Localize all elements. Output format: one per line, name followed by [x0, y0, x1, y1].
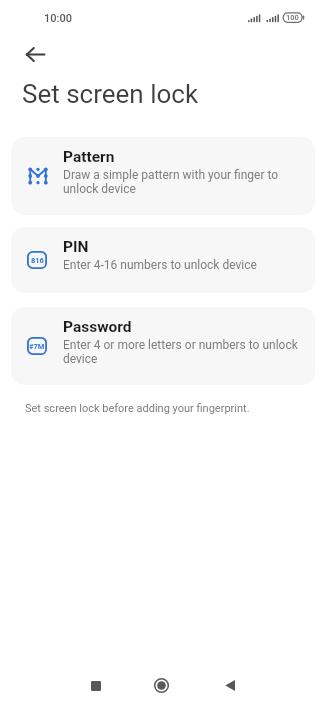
- staticText: Enter 4 or more letters or numbers to un…: [63, 338, 298, 366]
- button[interactable]: #7M: [11, 307, 315, 385]
- staticText: Set screen lock before adding your finge…: [25, 402, 250, 415]
- button[interactable]: [83, 673, 108, 698]
- button[interactable]: 816: [11, 227, 315, 293]
- staticText: PIN: [63, 238, 89, 256]
- staticText: 816: [31, 256, 44, 265]
- button[interactable]: Pattern: [11, 137, 315, 215]
- staticText: Set screen lock: [22, 79, 199, 109]
- staticText: Enter 4-16 numbers to unlock device: [63, 258, 257, 272]
- button[interactable]: [217, 673, 242, 698]
- staticText: Password: [63, 318, 132, 336]
- staticText: #7M: [29, 342, 45, 351]
- button[interactable]: [18, 40, 52, 68]
- staticText: 10:00: [44, 12, 72, 25]
- staticText: Pattern: [63, 148, 115, 166]
- staticText: 100: [286, 13, 299, 22]
- button[interactable]: [149, 673, 174, 698]
- staticText: Draw a simple pattern with your finger t…: [63, 168, 279, 196]
